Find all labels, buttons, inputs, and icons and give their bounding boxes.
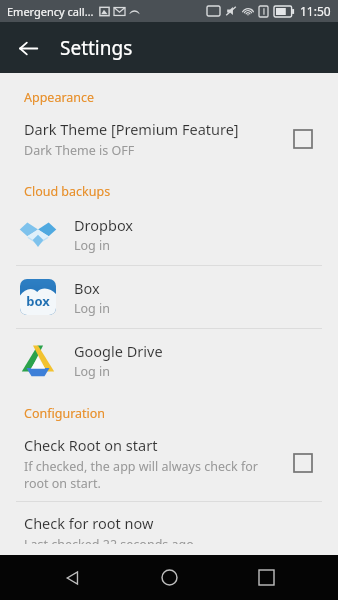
button[interactable]: Dropbox — [0, 203, 338, 265]
staticText: Configuration — [24, 405, 106, 422]
button[interactable]: Check Root on start — [0, 425, 338, 501]
button[interactable]: Home — [145, 555, 193, 600]
staticText: Emergency call… — [7, 4, 94, 19]
staticText: Dropbox — [74, 215, 134, 235]
button[interactable]: Back — [49, 555, 97, 600]
button[interactable]: box — [0, 266, 338, 328]
button[interactable]: Check for root now — [0, 502, 338, 555]
staticText: Google Drive — [74, 341, 163, 361]
staticText: Dark Theme [Premium Feature] — [24, 119, 239, 139]
staticText: Appearance — [24, 89, 95, 106]
staticText: Check Root on start — [24, 435, 158, 455]
staticText: Box — [74, 278, 100, 298]
staticText: Log in — [74, 363, 111, 380]
button[interactable]: Recent apps — [242, 555, 290, 600]
button[interactable]: Toggle Check Root on start — [288, 448, 318, 478]
staticText: box — [26, 292, 50, 310]
button[interactable]: Back — [8, 28, 48, 68]
staticText: Log in — [74, 237, 111, 254]
staticText: Dark Theme is OFF — [24, 142, 135, 159]
button[interactable]: Toggle Dark Theme [Premium Feature] — [288, 124, 318, 154]
staticText: Check for root now — [24, 513, 154, 533]
button[interactable]: Dark Theme [Premium Feature] — [0, 109, 338, 169]
staticText: Cloud backups — [24, 183, 111, 200]
staticText: Last checked 22 seconds ago — [24, 536, 194, 544]
staticText: Log in — [74, 300, 111, 317]
staticText: Settings — [60, 35, 133, 61]
staticText: If checked, the app will always check fo… — [24, 458, 258, 491]
staticText: 11:50 — [300, 3, 331, 19]
button[interactable]: Google Drive — [0, 329, 338, 391]
